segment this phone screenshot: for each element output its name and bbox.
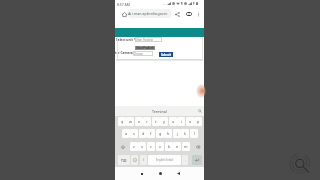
button[interactable]	[131, 155, 138, 165]
staticText: c	[150, 144, 152, 149]
staticText: j	[177, 131, 178, 136]
button[interactable]: g	[156, 129, 164, 138]
button[interactable]	[192, 142, 203, 151]
button[interactable]: v	[156, 142, 164, 151]
button[interactable]: Tabs	[184, 9, 193, 19]
button[interactable]: Home	[156, 169, 165, 178]
button[interactable]: n	[173, 142, 181, 151]
staticText: /	[143, 158, 145, 162]
button[interactable]: e	[135, 117, 143, 126]
staticText: d	[142, 131, 145, 136]
staticText: v	[159, 144, 161, 149]
staticText: 8:57 AM	[117, 2, 130, 7]
button[interactable]: /	[140, 155, 147, 165]
button[interactable]: o	[186, 117, 194, 126]
button[interactable]: Submit	[159, 52, 173, 57]
button[interactable]: l	[190, 129, 198, 138]
button[interactable]: c	[147, 142, 155, 151]
button[interactable]: j	[173, 129, 181, 138]
button[interactable]: English (India)	[148, 155, 181, 165]
staticText: ▮	[181, 1, 183, 5]
staticText: h	[167, 131, 170, 136]
button[interactable]	[118, 142, 128, 151]
button[interactable]: y	[160, 117, 168, 126]
staticText: o	[189, 119, 192, 124]
staticText: n	[176, 144, 179, 149]
staticText: g	[159, 131, 162, 136]
staticText: p	[197, 119, 200, 124]
staticText: Terminal	[152, 109, 167, 114]
staticText: ter Camera *	[115, 51, 136, 55]
staticText: English (India)	[156, 158, 174, 162]
staticText: x	[141, 144, 144, 149]
staticText: UttarPradesh	[136, 46, 155, 50]
staticText: y	[163, 119, 165, 124]
staticText: Submit	[161, 53, 171, 57]
button[interactable]: h	[164, 129, 172, 138]
button[interactable]: b	[165, 142, 173, 151]
staticText: e	[138, 119, 141, 124]
button[interactable]: Enter	[192, 155, 202, 165]
button[interactable]: t	[152, 117, 160, 126]
button[interactable]: Share	[173, 9, 182, 19]
staticText: .	[185, 158, 186, 162]
button[interactable]: More options	[194, 9, 203, 19]
staticText: ?123	[121, 159, 127, 162]
staticText: u	[172, 119, 175, 124]
staticText: i-man-apkindia.gov.in	[132, 11, 168, 16]
button[interactable]: u	[169, 117, 177, 126]
staticText: 3	[188, 12, 190, 16]
button[interactable]: z	[130, 142, 138, 151]
staticText: l	[194, 131, 195, 136]
button[interactable]: s	[130, 129, 138, 138]
button[interactable]: Choose	[133, 51, 153, 56]
button[interactable]: Home	[119, 9, 129, 19]
button[interactable]: i	[177, 117, 185, 126]
button[interactable]: d	[139, 129, 147, 138]
button[interactable]: Back	[174, 169, 183, 178]
button[interactable]: Search	[197, 108, 203, 114]
staticText: b	[168, 144, 171, 149]
staticText: ▮	[193, 1, 195, 5]
staticText: Choose	[133, 52, 144, 56]
button[interactable]: p	[194, 117, 202, 126]
staticText: r	[146, 119, 148, 124]
staticText: m	[184, 144, 188, 149]
button[interactable]: a	[122, 129, 130, 138]
button[interactable]: q	[118, 117, 126, 126]
button[interactable]: w	[126, 117, 134, 126]
staticText: i	[181, 119, 182, 124]
button[interactable]: f	[147, 129, 155, 138]
button[interactable]: Uttar Pradesh	[135, 37, 162, 42]
staticText: …	[163, 1, 166, 5]
staticText: a	[125, 131, 128, 136]
staticText: Uttar Pradesh	[135, 38, 154, 42]
button[interactable]: x	[138, 142, 146, 151]
button[interactable]: r	[143, 117, 151, 126]
button[interactable]: UttarPradesh	[135, 46, 155, 50]
staticText: z	[133, 144, 135, 149]
button[interactable]: m	[182, 142, 190, 151]
staticText: q	[121, 119, 124, 124]
button[interactable]: ?123	[118, 155, 130, 165]
button[interactable]: k	[181, 129, 189, 138]
staticText: t	[155, 119, 157, 124]
button[interactable]: Recent apps	[137, 169, 146, 178]
staticText: Select unit *	[116, 38, 136, 42]
staticText: f	[150, 131, 152, 136]
staticText: k	[184, 131, 187, 136]
staticText: w	[129, 119, 132, 124]
button[interactable]: i-man-apkindia.gov.in	[127, 9, 172, 18]
staticText: s	[133, 131, 135, 136]
